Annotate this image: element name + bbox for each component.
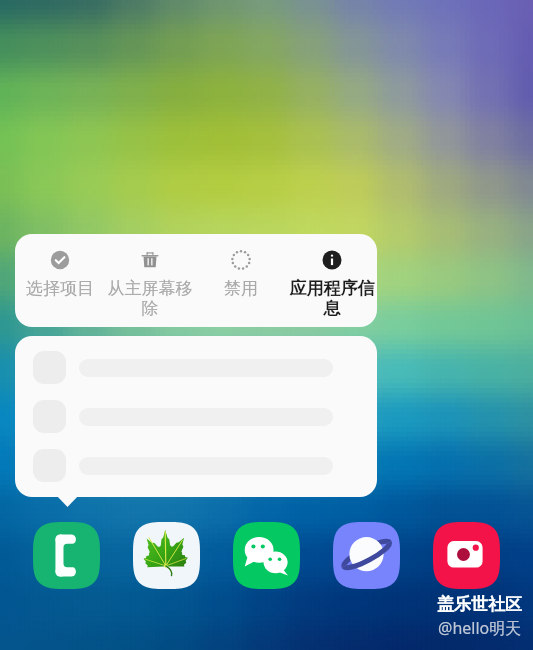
staticText: @hello明天 <box>438 617 522 639</box>
staticText: 盖乐世社区 <box>437 594 522 615</box>
button[interactable]: 选择项目 <box>15 234 105 327</box>
button[interactable]: 禁用 <box>195 234 286 327</box>
staticText: 从主屏幕移除 <box>106 278 194 319</box>
staticText: 选择项目 <box>26 278 94 299</box>
staticText: 禁用 <box>224 278 258 299</box>
button[interactable]: WeChat <box>233 522 300 589</box>
button[interactable]: Greenify <box>133 522 200 589</box>
button[interactable]: 应用程序信息 <box>286 234 377 327</box>
button[interactable]: Camera <box>433 522 500 589</box>
button[interactable]: Samsung Internet <box>333 522 400 589</box>
button[interactable]: Phone <box>33 522 100 589</box>
button[interactable]: 从主屏幕移除 <box>105 234 195 327</box>
staticText: 应用程序信息 <box>288 278 376 319</box>
